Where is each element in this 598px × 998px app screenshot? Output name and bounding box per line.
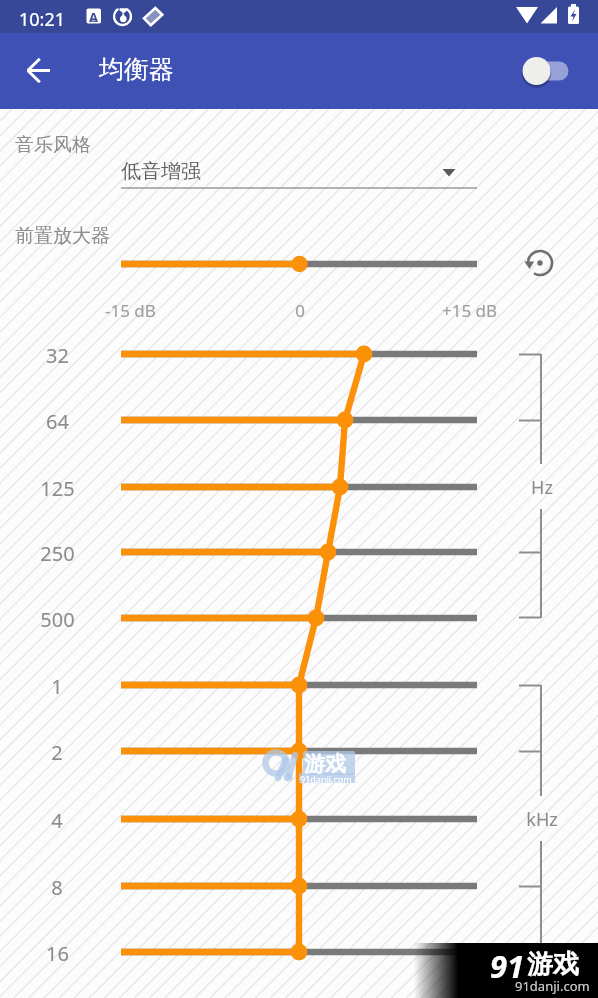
staticText: 游戏 <box>527 948 579 981</box>
button[interactable]: 低音增强 <box>121 152 477 190</box>
staticText: 0 <box>295 299 305 322</box>
staticText: 125 <box>40 475 75 502</box>
staticText: 32 <box>46 342 69 369</box>
staticText: 音乐风格 <box>15 133 91 157</box>
button[interactable]: Back <box>4 46 54 96</box>
staticText: 前置放大器 <box>15 224 110 248</box>
staticText: 91 <box>490 945 525 987</box>
staticText: 10:21 <box>19 7 66 32</box>
staticText: 4 <box>51 807 63 834</box>
staticText: 64 <box>46 408 69 435</box>
staticText: Hz <box>531 475 553 500</box>
staticText: 1 <box>51 673 63 700</box>
staticText: 91danji.com <box>300 773 352 785</box>
staticText: +15 dB <box>442 299 498 322</box>
staticText: 500 <box>40 606 75 633</box>
staticText: 91danji.com <box>515 977 590 995</box>
staticText: kHz <box>526 807 558 832</box>
staticText: 均衡器 <box>99 54 174 85</box>
staticText: 游戏 <box>304 751 346 777</box>
staticText: 8 <box>51 874 63 901</box>
staticText: -15 dB <box>105 299 156 322</box>
staticText: 2 <box>51 739 63 766</box>
staticText: A <box>89 8 98 26</box>
staticText: 250 <box>40 540 75 567</box>
staticText: 16 <box>46 940 69 967</box>
staticText: 低音增强 <box>121 159 201 184</box>
button[interactable]: Enable equalizer <box>512 51 574 91</box>
